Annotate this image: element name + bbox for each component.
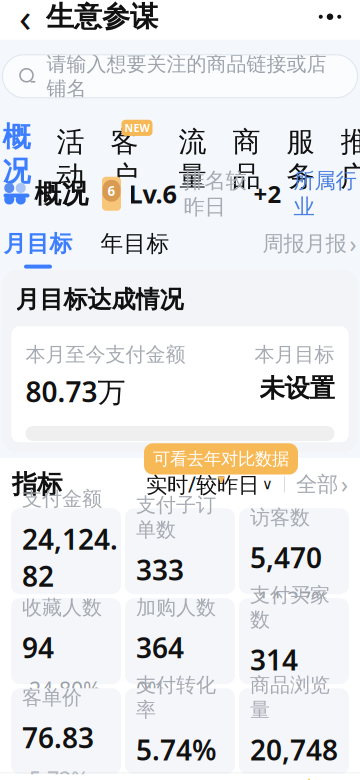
staticText: 76.83 [22, 719, 94, 756]
staticText: -15.82% [250, 687, 329, 715]
staticText: 未设置 [259, 373, 334, 404]
staticText: 6 [107, 182, 115, 200]
button[interactable]: 概况 [2, 120, 30, 198]
staticText: -14.16% [250, 777, 329, 780]
staticText: 加购人数 [136, 595, 216, 620]
button[interactable]: 支付子订单数 [125, 508, 235, 594]
staticText: 月目标 [3, 230, 72, 258]
button[interactable]: More options [308, 0, 352, 39]
staticText: 年目标 [100, 230, 169, 258]
button[interactable]: 加购人数 [125, 598, 235, 684]
staticText: Lv.6 [128, 177, 176, 210]
button[interactable]: Back [8, 0, 42, 39]
button[interactable]: 商品 [232, 120, 260, 194]
staticText: 24,124.82 [22, 520, 118, 595]
staticText: 流量 [178, 125, 206, 194]
staticText: ∨ [262, 476, 273, 492]
staticText: 收藏人数 [22, 595, 102, 620]
button[interactable]: 客户 [110, 120, 152, 194]
staticText: 客户 [110, 125, 138, 194]
staticText: 5.74% [136, 731, 217, 768]
staticText: 5,470 [250, 539, 322, 576]
staticText: 概况 [34, 177, 88, 210]
button[interactable]: 实时/较昨日 [146, 470, 273, 498]
staticText: 20,748 [250, 731, 338, 768]
staticText: 商品浏览量 [250, 673, 330, 722]
button[interactable]: 商品浏览量 [239, 688, 349, 774]
staticText: › [349, 229, 356, 259]
staticText: 支付转化率 [136, 673, 216, 722]
button[interactable]: 所属行业 [293, 168, 356, 220]
staticText: 本月目标 [254, 342, 334, 367]
button[interactable]: 访客数 [239, 508, 349, 594]
staticText: 支付金额 [22, 487, 102, 511]
staticText: 访客数 [250, 505, 310, 530]
button[interactable]: 流量 [178, 120, 206, 194]
staticText: 333 [136, 551, 184, 588]
staticText: 概况 [2, 120, 30, 189]
staticText: 0% [136, 675, 166, 703]
button[interactable]: 请输入想要关注的商品链接或店铺名 [2, 55, 357, 98]
button[interactable]: 服务 [286, 120, 314, 194]
staticText: 实时/较昨日 [146, 470, 259, 498]
staticText: -14.37% [250, 585, 329, 613]
staticText: 月目标达成情况 [15, 285, 183, 314]
staticText: -5.73% [22, 765, 89, 780]
staticText: 94 [22, 629, 54, 666]
staticText: › [341, 469, 348, 499]
staticText: 推广 [340, 125, 360, 194]
staticText: NEW [124, 121, 149, 135]
staticText: -24.80% [22, 675, 101, 703]
staticText: 80.73万 [25, 373, 125, 410]
button[interactable]: 支付转化率 [125, 688, 235, 774]
staticText: 支付买家数 [250, 583, 330, 632]
staticText: 生意参谋 [46, 0, 158, 34]
staticText: 请输入想要关注的商品链接或店铺名 [46, 52, 326, 101]
staticText: 314 [250, 641, 298, 678]
staticText: 可看去年对比数据 [153, 448, 289, 470]
staticText: 本月至今支付金额 [25, 342, 185, 367]
staticText: 支付子订单数 [136, 493, 216, 542]
button[interactable]: 月目标 [3, 230, 72, 269]
button[interactable]: 全部 [296, 469, 348, 499]
staticText: -20.64% [22, 603, 101, 632]
staticText: 364 [136, 629, 184, 666]
staticText: 服务 [286, 125, 314, 194]
staticText: ‹ [19, 0, 31, 43]
staticText: 排名较昨日 [183, 168, 246, 220]
button[interactable]: 周报月报 [262, 229, 356, 270]
staticText: 商品 [232, 125, 260, 194]
staticText: 活动 [56, 125, 84, 194]
button[interactable]: 收藏人数 [11, 598, 121, 684]
staticText: 周报月报 [262, 231, 346, 257]
staticText: 全部 [296, 471, 338, 497]
staticText: 客单价 [22, 685, 82, 710]
staticText: 指标 [12, 469, 62, 500]
button[interactable]: 年目标 [100, 230, 169, 269]
staticText: -19.17% [136, 597, 215, 625]
staticText: 所属行业 [293, 168, 356, 220]
staticText: ▾ [217, 471, 224, 487]
staticText: +2 [253, 178, 281, 210]
button[interactable]: 支付金额 [11, 508, 121, 594]
staticText: ⚡ [281, 778, 318, 780]
button[interactable]: 推广 [340, 120, 360, 194]
button[interactable]: 活动 [56, 120, 84, 194]
button[interactable]: 支付买家数 [239, 598, 349, 684]
button[interactable]: 客单价 [11, 688, 121, 774]
